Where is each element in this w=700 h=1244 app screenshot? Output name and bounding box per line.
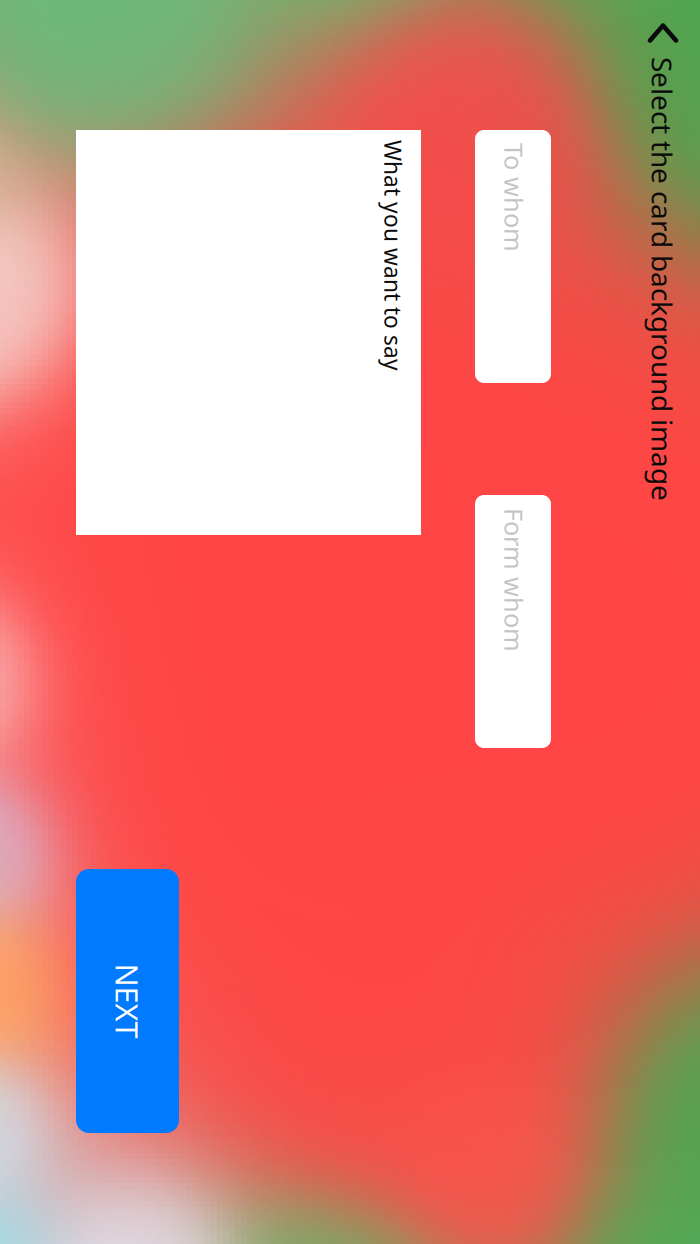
staticText: Select the card background image — [0, 291, 229, 328]
button[interactable]: Form whom — [223, 421, 476, 497]
button[interactable]: NEXT — [597, 793, 700, 896]
staticText: What you want to say — [0, 564, 99, 594]
button[interactable]: What you want to say — [0, 551, 263, 896]
button[interactable]: To whom — [0, 421, 111, 497]
